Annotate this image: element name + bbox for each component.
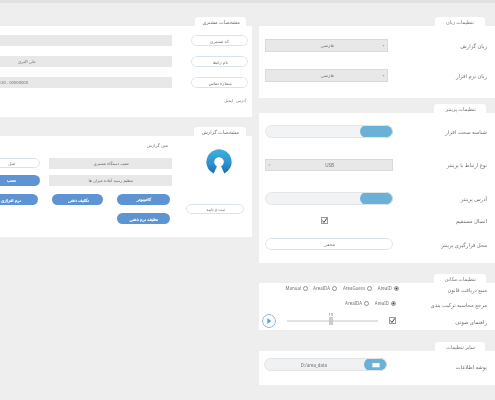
button[interactable]: تنظیم رسید آماده میزان ها: [49, 175, 172, 186]
staticText: زبان گزارش: [407, 42, 487, 49]
button[interactable]: Checkbox: [389, 317, 396, 324]
button[interactable]: شماره تماس: [191, 77, 248, 88]
staticText: ثبت و تایید: [206, 206, 225, 212]
button[interactable]: User avatar: [205, 148, 233, 176]
button[interactable]: کد مشتری: [191, 35, 248, 46]
staticText: آدرس پرینتر: [407, 195, 487, 202]
staticText: آدرس: [236, 98, 246, 103]
staticText: نظیفه نرم ذهنی: [129, 216, 158, 222]
button[interactable]: نصب: [0, 175, 40, 186]
button[interactable]: نام رابط: [191, 56, 248, 67]
staticText: تنظیمات پرینتر: [445, 106, 476, 113]
staticText: مشخصات مشتری: [202, 19, 240, 26]
button[interactable]: Play: [262, 314, 276, 328]
staticText: نام رابط: [212, 59, 228, 65]
staticText: فارسی: [320, 73, 334, 78]
staticText: AreaIDA: [313, 285, 330, 291]
staticText: پوشه اطلاعات: [397, 363, 487, 370]
staticText: AreaIDA: [345, 300, 362, 306]
staticText: تنظیمات مکانی: [444, 276, 476, 283]
staticText: ایمیل: [224, 98, 233, 103]
button[interactable]: AreaIDA: [345, 300, 369, 306]
button[interactable]: مخفی: [265, 238, 393, 250]
staticText: AreaID: [374, 300, 389, 306]
staticText: زبان نرم افزار: [407, 72, 487, 79]
staticText: تنظیم رسید آماده میزان ها: [88, 178, 133, 184]
button[interactable]: 09120 - 00000000: [0, 77, 172, 88]
staticText: کامپیوتر: [136, 197, 151, 202]
staticText: نصب: [6, 178, 16, 183]
staticText: مرجع محاسبه ترکیب بندی: [397, 301, 487, 308]
staticText: کد مشتری: [210, 38, 229, 44]
staticText: مشخصات گزارش: [201, 129, 239, 136]
button[interactable]: [265, 192, 393, 205]
staticText: قبل: [8, 161, 15, 166]
staticText: راهنمای صوتی: [407, 318, 487, 325]
staticText: علی اکبری: [17, 59, 36, 65]
staticText: D:/area_data: [300, 362, 327, 368]
staticText: شماره تماس: [208, 80, 232, 86]
staticText: USB: [325, 162, 334, 168]
other: Browse folder: [364, 358, 387, 371]
staticText: مخفی: [323, 242, 335, 247]
button[interactable]: AreaGuess: [342, 285, 372, 291]
button[interactable]: قبل: [0, 158, 40, 168]
staticText: اتصال مستقیم: [407, 217, 487, 224]
button[interactable]: نظیفه نرم ذهنی: [117, 213, 170, 224]
button[interactable]: [265, 125, 393, 138]
staticText: سایر تنظیمات: [446, 344, 475, 351]
button[interactable]: USB: [265, 159, 393, 171]
staticText: تنظیمات زبان: [446, 19, 474, 26]
button[interactable]: نصب دستگاه مشتری: [49, 158, 172, 169]
staticText: Manual: [285, 285, 301, 291]
staticText: نوع ارتباط با پرینتر: [407, 161, 487, 168]
button[interactable]: D:/area_data: [264, 358, 387, 371]
staticText: تکلیف ذهنی: [67, 197, 89, 203]
button[interactable]: علی اکبری: [0, 56, 172, 67]
staticText: نرم افزاری: [0, 197, 21, 203]
staticText: 10: [328, 312, 333, 317]
staticText: متن گزارش: [146, 142, 168, 148]
button[interactable]: کامپیوتر: [117, 194, 170, 205]
staticText: AreaID: [377, 285, 392, 291]
button[interactable]: AreaIDA: [313, 285, 337, 291]
button[interactable]: AreaID: [377, 285, 399, 291]
staticText: نصب دستگاه مشتری: [93, 161, 129, 167]
button[interactable]: فارسی: [265, 69, 388, 82]
staticText: 09120 - 00000000: [0, 80, 28, 86]
staticText: محل قرارگیری پرینتر: [407, 241, 487, 248]
button[interactable]: Volume: [287, 312, 378, 326]
button[interactable]: Checkbox: [321, 217, 328, 224]
staticText: AreaGuess: [342, 285, 365, 291]
button[interactable]: AreaID: [374, 300, 396, 306]
button[interactable]: تکلیف ذهنی: [52, 194, 103, 205]
staticText: فارسی: [320, 43, 334, 48]
button[interactable]: Manual: [285, 285, 308, 291]
button[interactable]: فارسی: [265, 39, 388, 52]
staticText: منبع دریافت قانون: [407, 286, 487, 293]
button[interactable]: ثبت و تایید: [186, 204, 244, 214]
button[interactable]: نرم افزاری: [0, 194, 38, 205]
staticText: شناسه سخت افزار: [407, 128, 487, 135]
